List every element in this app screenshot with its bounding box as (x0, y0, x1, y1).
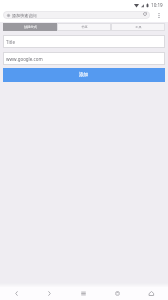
button[interactable]: 添加 (3, 68, 165, 82)
button[interactable]: 工具 (111, 23, 165, 31)
staticText: Title (6, 39, 15, 45)
button[interactable]: More options (153, 9, 165, 21)
button[interactable]: Menu (66, 287, 100, 300)
staticText: 添加快速访问 (12, 13, 37, 18)
button[interactable]: Back (0, 287, 33, 300)
staticText: 快捷方式 (24, 25, 37, 29)
staticText: 添加 (79, 72, 89, 78)
staticText: 书签 (81, 25, 88, 29)
button[interactable]: Forward (33, 287, 66, 300)
staticText: 10:19 (151, 2, 163, 8)
button[interactable]: 书签 (57, 23, 111, 31)
button[interactable]: Tabs (100, 287, 134, 300)
button[interactable]: Title (3, 35, 165, 48)
staticText: www.google.com (6, 56, 43, 62)
button[interactable]: 快捷方式 (3, 23, 57, 31)
button[interactable]: 添加快速访问 (3, 11, 150, 19)
button[interactable]: www.google.com (3, 52, 165, 65)
staticText: 工具 (135, 25, 142, 29)
button[interactable]: Home (134, 287, 168, 300)
button[interactable]: Refresh (140, 11, 150, 19)
